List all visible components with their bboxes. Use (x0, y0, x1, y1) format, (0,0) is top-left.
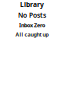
staticText: All caught up (15, 31, 48, 38)
staticText: Inbox Zero (19, 22, 45, 29)
staticText: No Posts (18, 11, 46, 20)
staticText: Library (20, 0, 44, 9)
